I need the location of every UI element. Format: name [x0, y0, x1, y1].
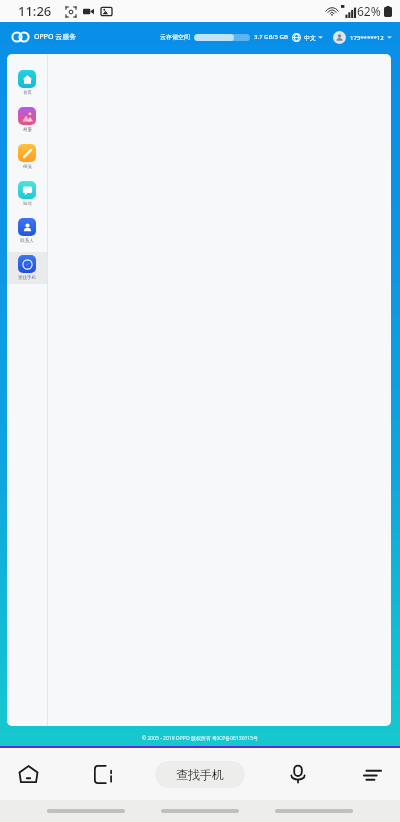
- button[interactable]: Home: [6, 752, 50, 796]
- staticText: 3.7 GB/5 GB: [254, 33, 288, 41]
- button[interactable]: 联系人: [7, 215, 47, 247]
- button[interactable]: Menu: [350, 752, 394, 796]
- staticText: 联系人: [20, 238, 34, 244]
- button[interactable]: 中文: [290, 33, 325, 42]
- staticText: © 2005 - 2019 OPPO 版权所有 粤ICP备06130115号: [142, 735, 259, 742]
- staticText: 云存储空间: [160, 33, 190, 41]
- staticText: 中文: [304, 34, 316, 42]
- button[interactable]: 短信: [7, 178, 47, 210]
- staticText: 首页: [23, 90, 32, 96]
- button[interactable]: 查找手机: [155, 761, 245, 788]
- staticText: 11:26: [18, 2, 52, 20]
- button[interactable]: 173*****12: [331, 31, 394, 44]
- button[interactable]: Recents: [81, 752, 125, 796]
- staticText: 173*****12: [350, 34, 384, 42]
- button[interactable]: 查找手机: [7, 252, 47, 284]
- staticText: 相册: [23, 127, 32, 133]
- staticText: 便笺: [23, 164, 32, 170]
- staticText: 短信: [23, 201, 32, 207]
- button[interactable]: 便笺: [7, 141, 47, 173]
- staticText: 62%: [357, 3, 381, 19]
- button[interactable]: 相册: [7, 104, 47, 136]
- staticText: OPPO 云服务: [34, 32, 77, 42]
- button[interactable]: Voice search: [276, 752, 320, 796]
- staticText: 查找手机: [176, 767, 224, 782]
- button[interactable]: 首页: [7, 67, 47, 99]
- staticText: 查找手机: [18, 275, 36, 281]
- button[interactable]: OPPO 云服务: [12, 32, 77, 42]
